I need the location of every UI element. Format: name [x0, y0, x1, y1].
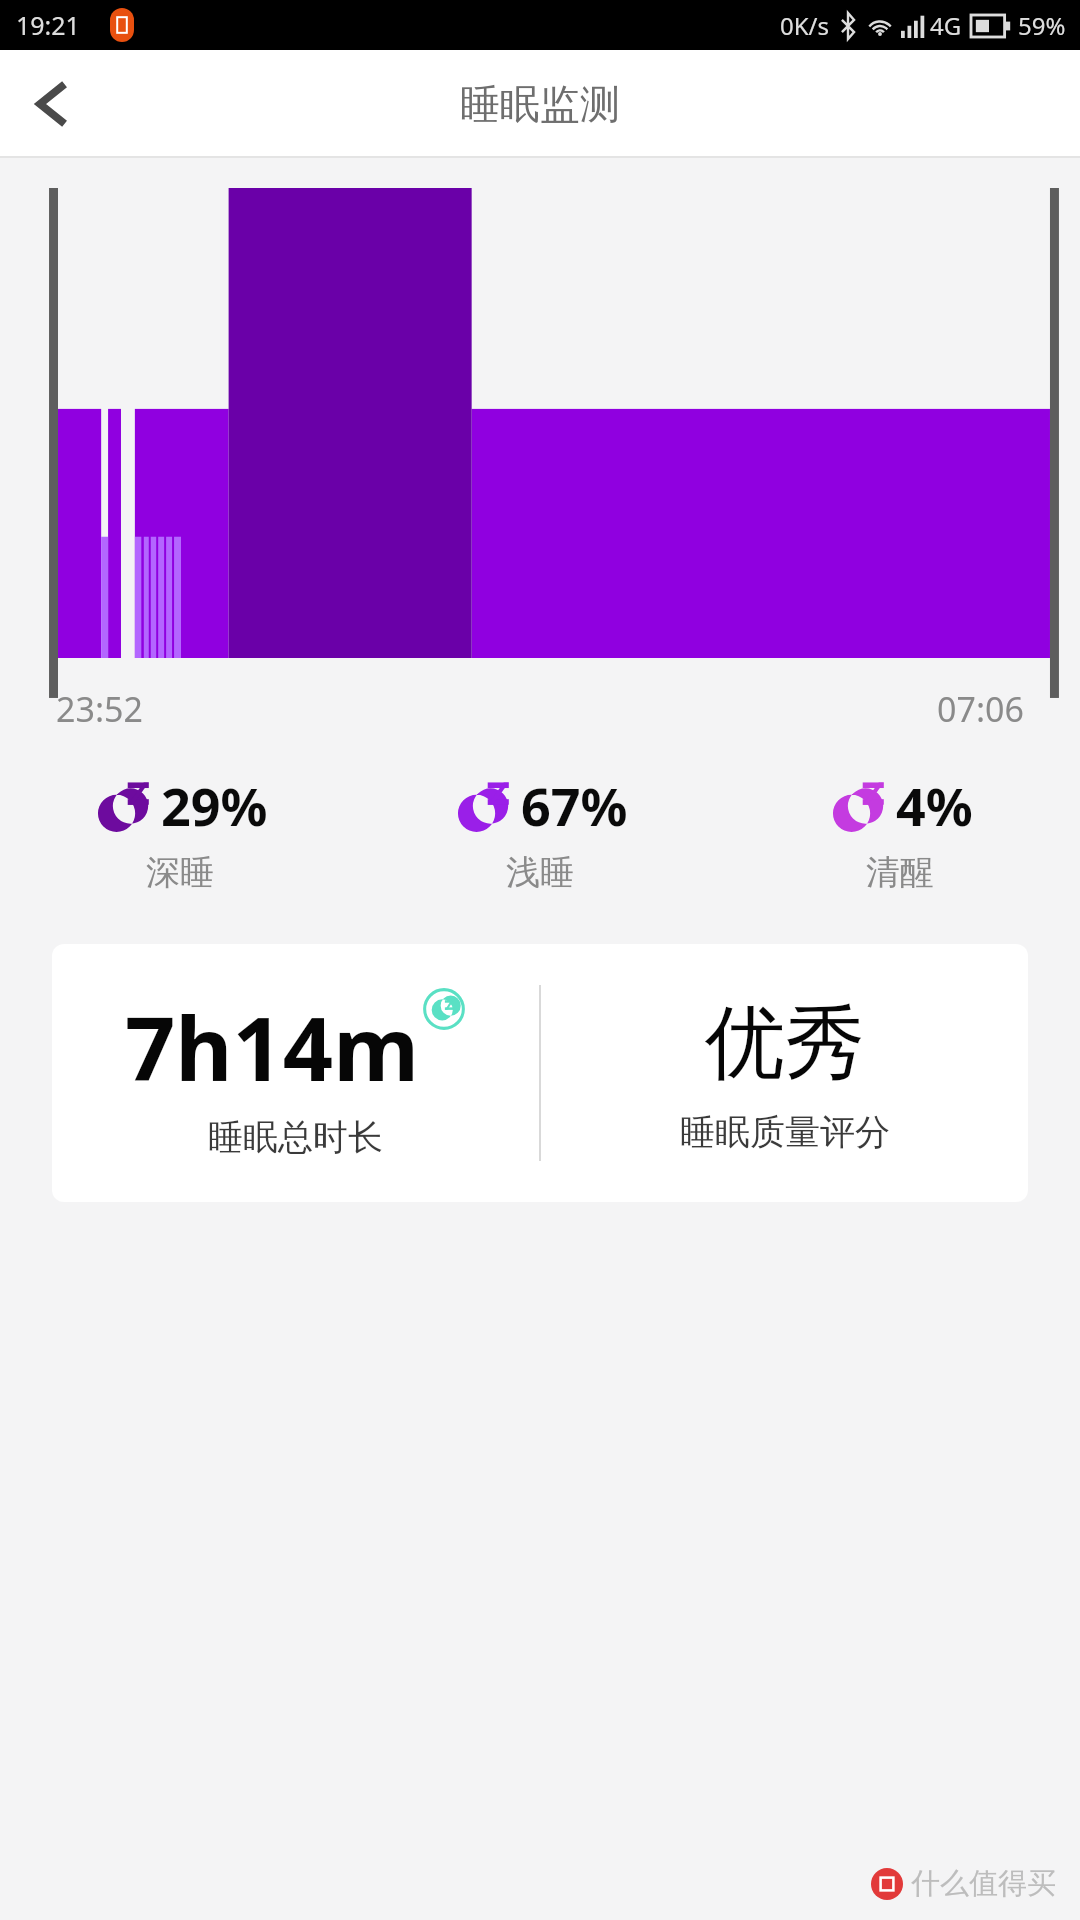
staticText: 睡眠监测: [460, 79, 620, 129]
staticText: 0K/s: [780, 9, 830, 42]
staticText: 清醒: [866, 851, 934, 894]
staticText: 4G: [930, 9, 962, 42]
button[interactable]: 7h14m: [52, 944, 1028, 1202]
staticText: 优秀: [705, 993, 865, 1094]
staticText: 浅睡: [506, 851, 574, 894]
button[interactable]: Back: [8, 58, 100, 150]
staticText: 4%: [896, 770, 973, 841]
button[interactable]: 29%: [0, 770, 360, 894]
button[interactable]: 4%: [720, 770, 1080, 894]
staticText: 23:52: [56, 686, 143, 732]
staticText: 19:21: [16, 8, 80, 42]
staticText: 67%: [521, 770, 628, 841]
staticText: 59%: [1018, 9, 1066, 42]
staticText: 29%: [161, 770, 268, 841]
staticText: 睡眠质量评分: [680, 1110, 890, 1154]
staticText: 07:06: [937, 686, 1024, 732]
staticText: 睡眠总时长: [208, 1115, 383, 1159]
button[interactable]: 67%: [360, 770, 720, 894]
staticText: 什么值得买: [911, 1865, 1056, 1902]
staticText: 7h14m: [125, 987, 420, 1107]
staticText: 深睡: [146, 851, 214, 894]
